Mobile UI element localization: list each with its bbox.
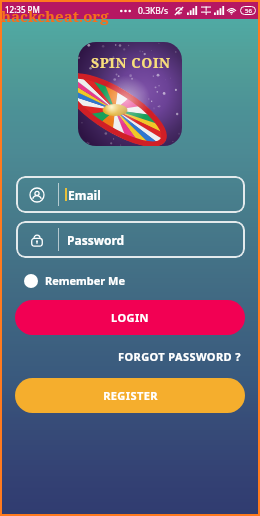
button[interactable]: FORGOT PASSWORD ? (116, 346, 243, 367)
staticText: 12:35 PM (5, 4, 40, 15)
staticText: Remember Me (45, 273, 126, 288)
button[interactable]: LOGIN (15, 300, 245, 335)
staticText: Email (68, 187, 101, 203)
staticText: LOGIN (111, 310, 149, 325)
button[interactable]: Email (16, 176, 245, 213)
staticText: REGISTER (103, 388, 158, 403)
staticText: SPIN COIN (91, 53, 171, 72)
button[interactable]: Password (16, 221, 245, 258)
staticText: FORGOT PASSWORD ? (118, 349, 241, 364)
staticText: 0.3KB/s (138, 5, 169, 17)
staticText: 56 (245, 7, 252, 15)
button[interactable]: REGISTER (15, 378, 245, 413)
button[interactable]: Remember Me (24, 271, 126, 290)
staticText: hackcheat.org (1, 6, 109, 26)
button[interactable]: Spin Coin app icon (78, 42, 182, 146)
staticText: Password (67, 232, 125, 248)
